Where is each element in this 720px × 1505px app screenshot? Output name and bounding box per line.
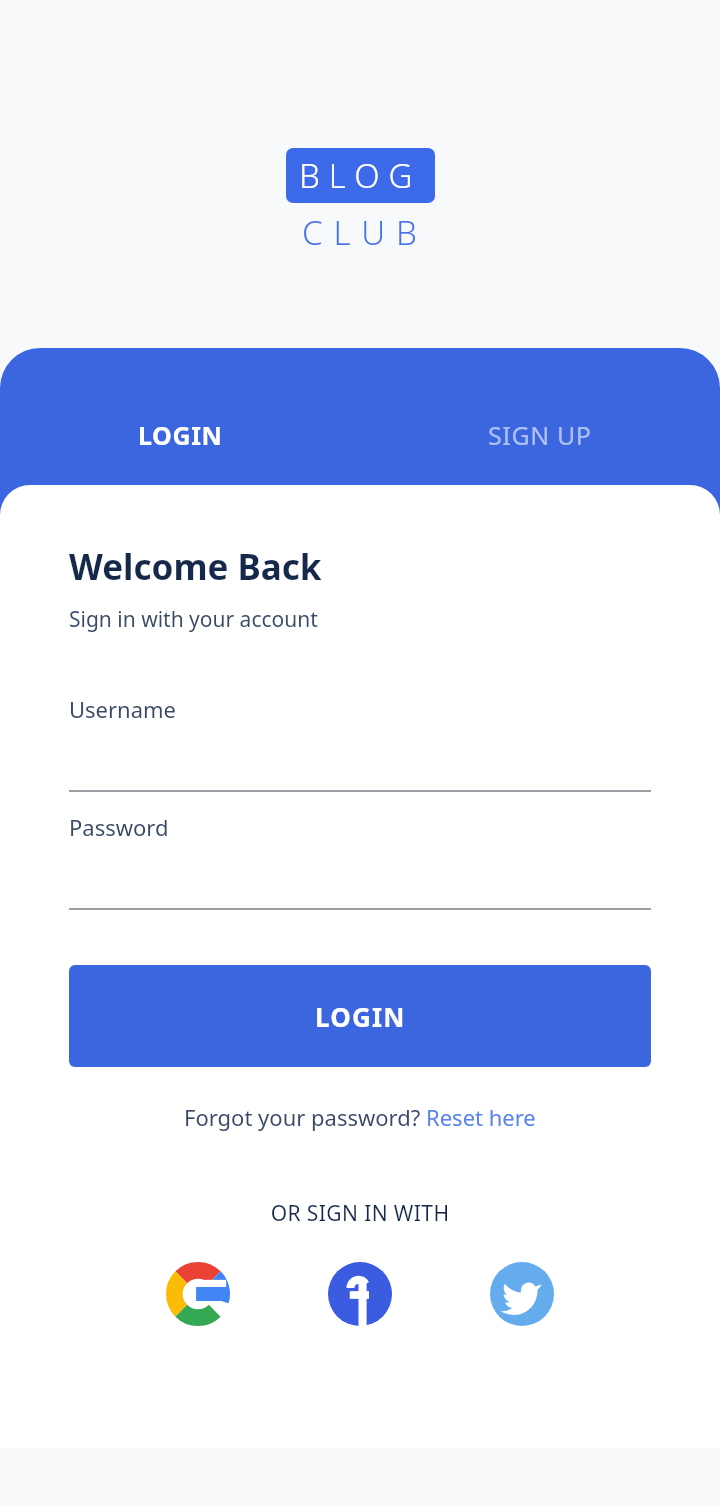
button[interactable]: SIGN UP [360, 400, 720, 470]
staticText: SIGN UP [488, 418, 592, 452]
button[interactable]: Forgot your password? Reset here [0, 1102, 720, 1132]
staticText: Password [69, 812, 169, 842]
staticText: Forgot your password? Reset here [184, 1102, 536, 1132]
staticText: Sign in with your account [69, 605, 318, 634]
button[interactable]: Sign in with Facebook [324, 1258, 396, 1330]
staticText: CLUB [302, 210, 428, 255]
button[interactable]: Sign in with Google [162, 1258, 234, 1330]
staticText: BLOG [299, 153, 422, 198]
button[interactable]: Username [0, 694, 720, 792]
button[interactable]: Password [0, 812, 720, 910]
staticText: OR SIGN IN WITH [0, 1199, 720, 1228]
staticText: LOGIN [315, 999, 406, 1034]
button[interactable]: LOGIN [69, 965, 651, 1067]
button[interactable]: LOGIN [0, 400, 360, 470]
staticText: Username [69, 694, 177, 724]
staticText: Welcome Back [69, 543, 322, 591]
button[interactable]: Sign in with Twitter [486, 1258, 558, 1330]
staticText: LOGIN [138, 418, 223, 452]
